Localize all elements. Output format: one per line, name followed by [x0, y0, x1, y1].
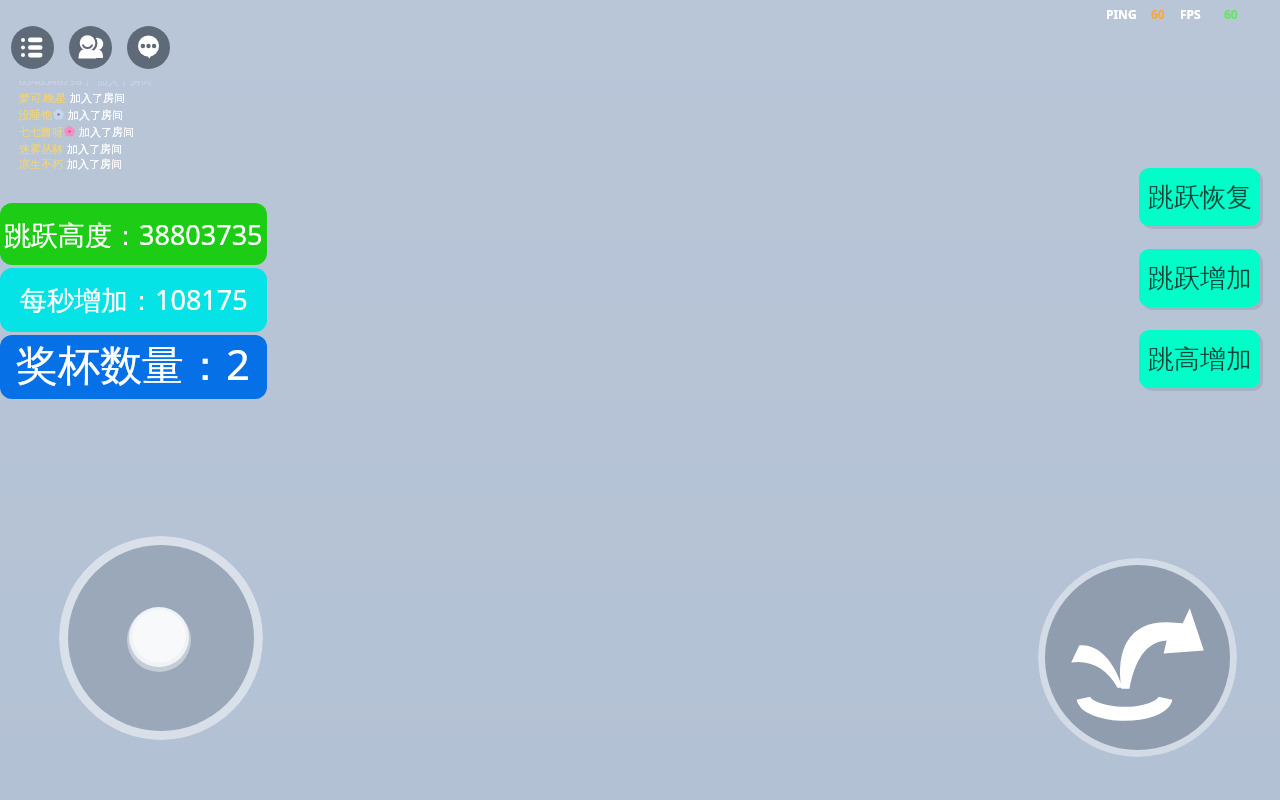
button[interactable]: Joystick	[59, 536, 263, 740]
button[interactable]: 跳高增加	[1139, 330, 1260, 388]
button[interactable]: 跳跃恢复	[1139, 168, 1260, 226]
staticText: 跳跃恢复	[1148, 181, 1252, 214]
staticText: 每秒增加：108175	[20, 281, 248, 318]
staticText: 跳跃增加	[1148, 262, 1252, 295]
staticText: 梦可.晚星	[19, 90, 66, 105]
button[interactable]: 跳跃增加	[1139, 249, 1260, 307]
staticText: 加入了房间	[68, 108, 123, 122]
staticText: 七七酱呀	[19, 125, 63, 139]
staticText: 加入了房间	[67, 142, 122, 156]
staticText: 跳高增加	[1148, 343, 1252, 376]
staticText: 加入了房间	[79, 125, 134, 139]
staticText: 没睡饱	[19, 108, 52, 122]
staticText: 6546548798了	[19, 81, 93, 88]
staticText: 加入了房间	[67, 157, 122, 171]
staticText: 加入了房间	[70, 91, 125, 105]
button[interactable]: 每秒增加：108175	[0, 268, 267, 332]
staticText: 凉生不朽	[19, 157, 63, 171]
staticText: 60	[1151, 6, 1165, 22]
button[interactable]: Friends	[69, 26, 112, 69]
staticText: 跳跃高度：38803735	[4, 216, 263, 253]
button[interactable]: 奖杯数量：2	[0, 335, 267, 399]
staticText: 奖杯数量：2	[16, 335, 251, 392]
staticText: 60	[1224, 6, 1238, 22]
button[interactable]: Chat	[127, 26, 170, 69]
staticText: FPS	[1180, 6, 1201, 22]
staticText: PING	[1106, 6, 1137, 22]
button[interactable]: Menu	[11, 26, 54, 69]
button[interactable]: Jump	[1038, 558, 1237, 757]
staticText: 加入了房间	[97, 81, 152, 88]
button[interactable]: 跳跃高度：38803735	[0, 203, 267, 265]
staticText: 迷雾丛林	[19, 142, 63, 156]
